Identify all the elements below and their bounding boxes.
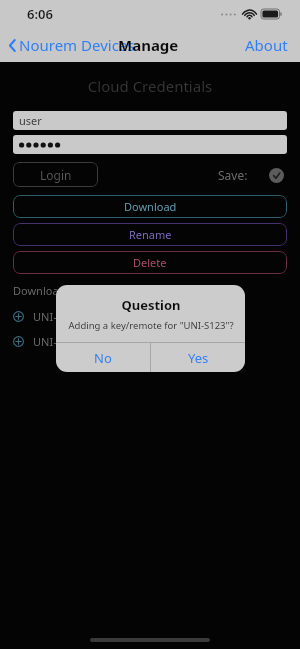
button[interactable]: Save credentials toggle — [265, 164, 287, 186]
button[interactable]: UNI-S123 — [13, 309, 287, 324]
staticText: Rename — [129, 227, 172, 242]
staticText: Save: — [218, 167, 248, 183]
button[interactable]: Yes — [151, 343, 245, 372]
button[interactable]: user — [13, 111, 287, 130]
staticText: Manage — [118, 35, 179, 55]
staticText: Nourem Devices — [19, 35, 135, 55]
staticText: Cloud Credentials — [13, 76, 287, 96]
button[interactable]: UNI-S124 — [13, 334, 287, 349]
staticText: No — [94, 349, 112, 367]
staticText: Downloaded Keys — [13, 283, 105, 298]
button[interactable]: Rename — [13, 223, 287, 246]
staticText: Download — [124, 199, 177, 214]
staticText: user — [19, 113, 42, 128]
staticText: Login — [40, 167, 72, 183]
staticText: 6:06 — [27, 5, 53, 23]
button[interactable]: No — [56, 343, 150, 372]
button[interactable]: Login — [13, 162, 98, 187]
staticText: Delete — [133, 255, 167, 270]
button[interactable]: Download — [13, 195, 287, 218]
staticText: Yes — [188, 349, 209, 367]
button[interactable]: Nourem Devices — [0, 31, 141, 59]
staticText: Question — [121, 296, 181, 314]
staticText: UNI-S123 — [33, 309, 82, 324]
button[interactable]: Delete — [13, 251, 287, 274]
button[interactable]: About — [233, 29, 300, 61]
staticText: Adding a key/remote for "UNI-S123"? — [68, 319, 234, 332]
staticText: UNI-S124 — [33, 334, 82, 349]
button[interactable] — [13, 135, 287, 154]
